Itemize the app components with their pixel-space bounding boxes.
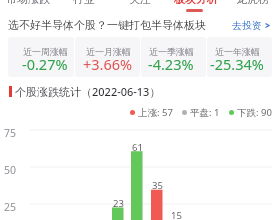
staticText: 平盘: 1 [190, 106, 220, 119]
staticText: 选不好半导体个股？一键打包半导体板块 [8, 18, 206, 32]
button[interactable] [8, 37, 74, 77]
button[interactable] [207, 37, 272, 77]
staticText: 市场涨跌 [6, 0, 50, 4]
staticText: 近一年涨幅 [215, 46, 260, 57]
button[interactable]: 下跌: 90 [229, 106, 272, 119]
staticText: 去投资 [232, 19, 262, 32]
staticText: 35 [152, 179, 163, 192]
staticText: -4.23% [148, 54, 194, 74]
staticText: 75 [4, 126, 17, 140]
staticText: +3.66% [83, 54, 133, 74]
button[interactable]: 龙虎榜 [224, 0, 280, 12]
staticText: 50 [4, 163, 17, 177]
button[interactable]: 上涨: 57 [130, 106, 173, 119]
button[interactable]: 个股涨跌统计（2022-06-13） [9, 84, 161, 99]
staticText: 15 [171, 209, 182, 220]
staticText: 板块分析 [174, 0, 218, 4]
staticText: -0.27% [22, 54, 68, 74]
staticText: 上涨: 57 [138, 106, 173, 119]
staticText: 下跌: 90 [237, 106, 272, 119]
staticText: 龙虎榜 [236, 0, 269, 4]
button[interactable]: 关注 [112, 0, 168, 12]
button[interactable]: 平盘: 1 [182, 106, 220, 119]
button[interactable] [141, 37, 206, 77]
button[interactable]: 行业 [56, 0, 112, 12]
staticText: 23 [113, 197, 124, 210]
button[interactable]: 去投资 [232, 19, 270, 32]
button[interactable] [75, 37, 140, 77]
staticText: 个股涨跌统计（2022-06-13） [15, 84, 161, 99]
staticText: 近一季涨幅 [149, 46, 194, 57]
button[interactable]: 市场涨跌 [0, 0, 56, 12]
button[interactable]: 板块分析 [168, 0, 224, 12]
staticText: 关注 [129, 0, 151, 4]
staticText: 61 [132, 141, 143, 154]
staticText: 25 [4, 200, 17, 214]
staticText: 近一月涨幅 [86, 46, 131, 57]
staticText: 行业 [73, 0, 95, 4]
staticText: -25.34% [210, 54, 264, 74]
other: 去投资 [265, 21, 270, 30]
staticText: 近一周涨幅 [23, 46, 68, 57]
